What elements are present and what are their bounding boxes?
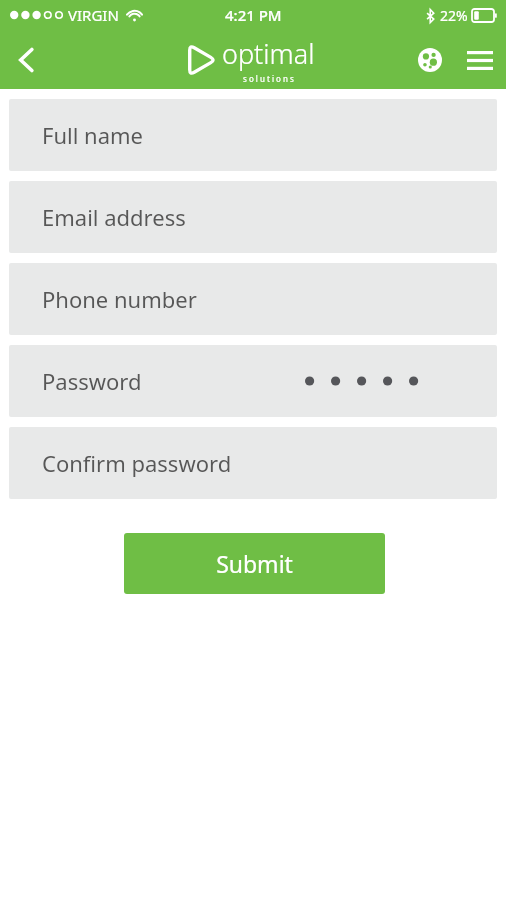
staticText: VIRGIN [68,5,119,25]
button[interactable]: optimal [179,35,315,84]
button[interactable]: Language [406,36,454,84]
button[interactable]: Email address [9,181,497,253]
button[interactable]: Menu [454,34,506,86]
button[interactable]: Submit [124,533,385,594]
button[interactable]: Back [0,34,52,86]
staticText: Full name [42,120,144,150]
staticText: Email address [42,202,186,232]
staticText: 22% [440,6,468,25]
button[interactable]: Phone number [9,263,497,335]
staticText: Password [42,366,142,396]
staticText: 4:21 PM [225,5,282,25]
staticText: Confirm password [42,448,232,478]
staticText: optimal [222,35,315,72]
staticText: s o l u t i o n s [243,73,294,84]
staticText: Submit [216,548,293,579]
button[interactable]: Password [9,345,497,417]
button[interactable]: Confirm password [9,427,497,499]
staticText: Phone number [42,284,197,314]
button[interactable]: Full name [9,99,497,171]
